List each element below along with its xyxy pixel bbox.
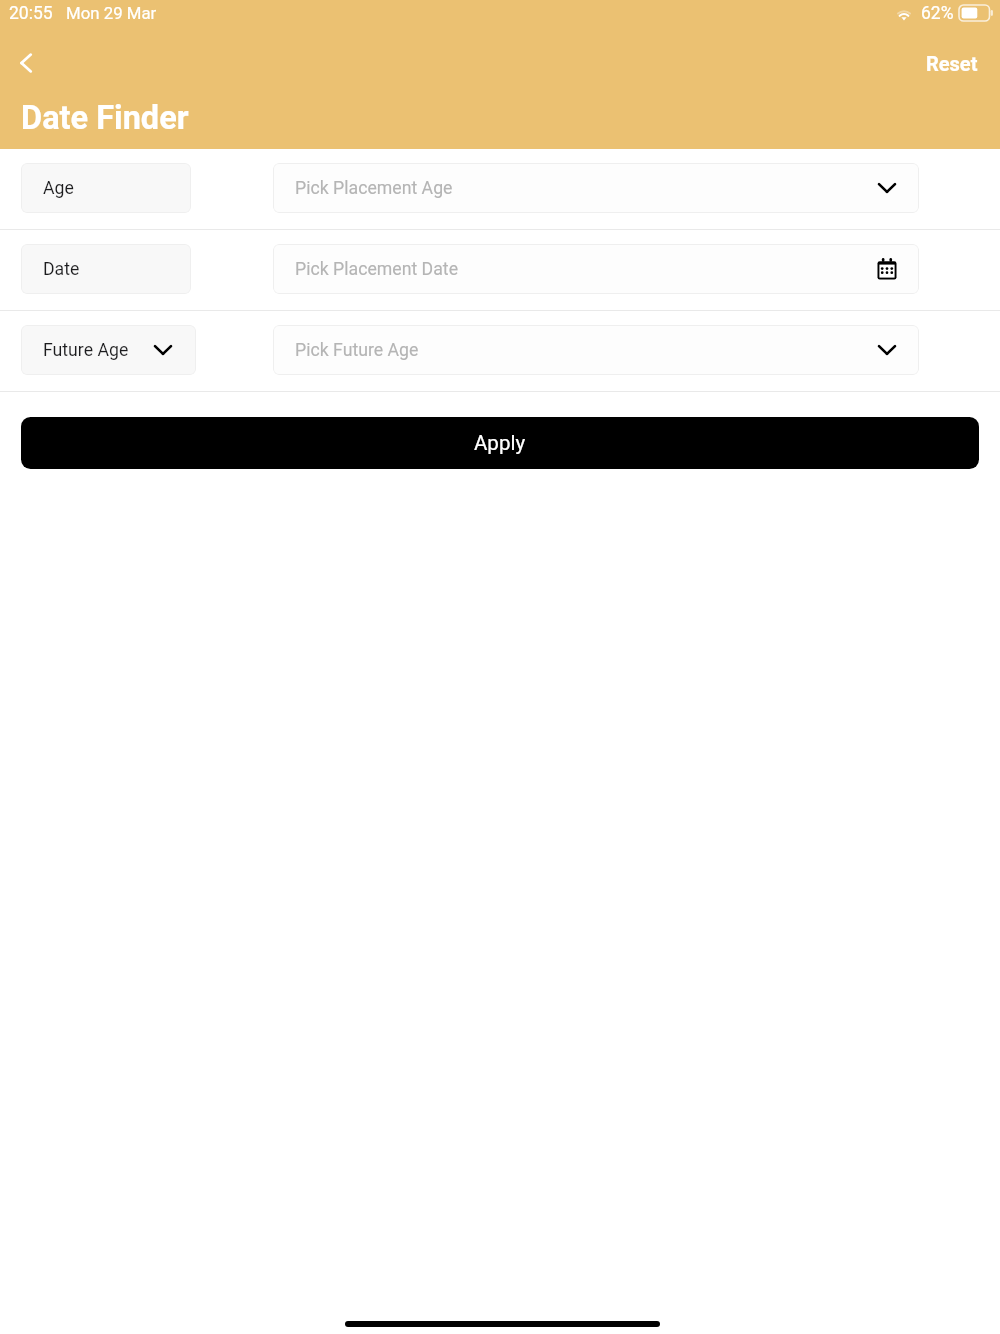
staticText: Pick Placement Date bbox=[295, 259, 459, 280]
button[interactable]: Apply bbox=[21, 417, 979, 469]
button[interactable]: Pick Placement Age bbox=[273, 163, 919, 213]
button[interactable]: Pick Future Age bbox=[273, 325, 919, 375]
staticText: Future Age bbox=[43, 340, 129, 361]
button[interactable]: Date bbox=[21, 244, 191, 294]
staticText: Apply bbox=[474, 431, 526, 455]
staticText: 20:55 bbox=[9, 3, 53, 24]
staticText: Age bbox=[43, 178, 74, 199]
button[interactable]: Future Age bbox=[21, 325, 196, 375]
staticText: Date Finder bbox=[21, 99, 189, 137]
staticText: Pick Future Age bbox=[295, 340, 419, 361]
button[interactable]: Age bbox=[21, 163, 191, 213]
button[interactable]: Back bbox=[5, 46, 39, 80]
button[interactable]: Pick Placement Date bbox=[273, 244, 919, 294]
staticText: Mon 29 Mar bbox=[66, 3, 157, 23]
other: Pick date bbox=[877, 258, 897, 280]
staticText: 62% bbox=[921, 3, 954, 24]
staticText: Date bbox=[43, 259, 80, 280]
button[interactable]: Reset bbox=[920, 46, 984, 81]
staticText: Pick Placement Age bbox=[295, 178, 453, 199]
staticText: Reset bbox=[926, 52, 978, 75]
